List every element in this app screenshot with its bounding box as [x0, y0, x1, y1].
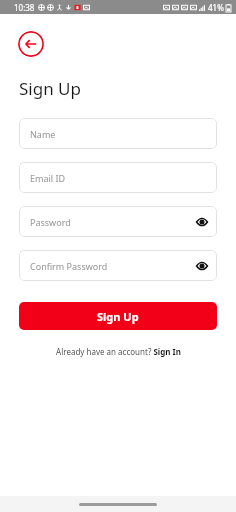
staticText: Sign Up [97, 309, 139, 324]
button[interactable]: Sign Up [19, 302, 217, 330]
button[interactable]: Toggle password visibility [195, 259, 209, 273]
staticText: Confirm Password [30, 260, 108, 272]
staticText: Password [30, 216, 71, 228]
button[interactable]: Email ID [19, 162, 217, 193]
button[interactable]: Already have an account? Sign In [0, 346, 236, 357]
staticText: Sign Up [19, 77, 81, 100]
staticText: Email ID [30, 172, 66, 184]
staticText: 41% [208, 2, 224, 13]
staticText: 10:38 [14, 2, 35, 13]
staticText: Already have an account? Sign In [56, 346, 181, 357]
staticText: Name [30, 128, 56, 140]
button[interactable]: Toggle password visibility [195, 215, 209, 229]
button[interactable]: Confirm Password [19, 250, 217, 281]
button[interactable]: Password [19, 206, 217, 237]
button[interactable]: Back [18, 31, 44, 57]
button[interactable]: Name [19, 118, 217, 149]
